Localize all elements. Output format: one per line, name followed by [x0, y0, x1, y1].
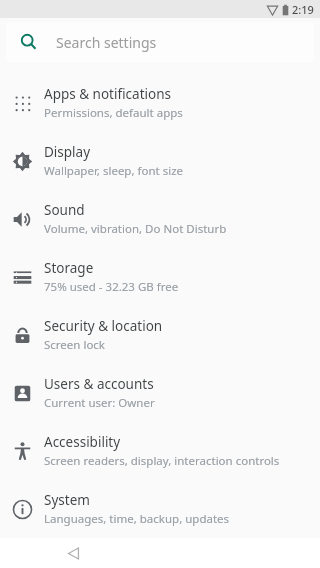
staticText: Apps & notifications: [44, 85, 171, 103]
staticText: Search settings: [56, 33, 157, 52]
staticText: Storage: [44, 259, 94, 277]
button[interactable]: Users & accounts: [0, 364, 320, 422]
staticText: Volume, vibration, Do Not Disturb: [44, 221, 227, 237]
staticText: Screen readers, display, interaction con…: [44, 453, 280, 469]
staticText: 2:19: [292, 2, 314, 17]
staticText: Permissions, default apps: [44, 105, 183, 121]
staticText: Users & accounts: [44, 375, 154, 393]
staticText: Wallpaper, sleep, font size: [44, 163, 184, 179]
button[interactable]: Display: [0, 132, 320, 190]
button[interactable]: System: [0, 480, 320, 538]
staticText: Accessibility: [44, 433, 121, 451]
staticText: System: [44, 491, 90, 509]
staticText: Display: [44, 143, 91, 161]
staticText: Security & location: [44, 317, 163, 335]
staticText: Screen lock: [44, 337, 106, 353]
staticText: Sound: [44, 201, 85, 219]
button[interactable]: Apps & notifications: [0, 74, 320, 132]
staticText: Languages, time, backup, updates: [44, 511, 230, 527]
button[interactable]: Accessibility: [0, 422, 320, 480]
staticText: 75% used - 32.23 GB free: [44, 279, 179, 295]
staticText: Current user: Owner: [44, 395, 155, 411]
button[interactable]: Back: [60, 540, 86, 566]
button[interactable]: Security & location: [0, 306, 320, 364]
button[interactable]: Sound: [0, 190, 320, 248]
button[interactable]: Storage: [0, 248, 320, 306]
button[interactable]: Search settings: [6, 22, 314, 62]
